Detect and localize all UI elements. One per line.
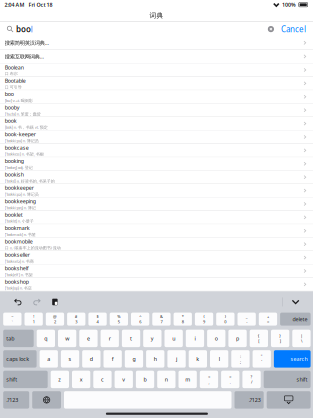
button[interactable]: :	[231, 350, 250, 368]
staticText: [bʊk] n. 书，书籍 vt. 预定	[5, 125, 48, 130]
button[interactable]: Boolean	[0, 63, 313, 77]
button[interactable]: 搜索互联网词典…	[0, 50, 313, 63]
staticText: 7	[160, 319, 162, 324]
button[interactable]: #	[67, 313, 85, 326]
button[interactable]: >	[221, 371, 239, 388]
button[interactable]: delete	[280, 313, 311, 326]
button[interactable]: tab	[3, 330, 34, 347]
button[interactable]: bookkeeping	[0, 197, 313, 211]
button[interactable]: (	[195, 313, 213, 326]
button[interactable]: "	[253, 350, 271, 368]
button[interactable]: m	[178, 371, 197, 388]
button[interactable]: %	[110, 313, 128, 326]
button[interactable]: )	[216, 313, 234, 326]
staticText: boo	[5, 90, 14, 97]
button[interactable]: Hide keyboard	[267, 391, 311, 409]
button[interactable]: w	[58, 330, 76, 347]
button[interactable]: }	[271, 330, 289, 347]
button[interactable]: t	[122, 330, 140, 347]
button[interactable]: e	[79, 330, 98, 347]
staticText: .?123	[6, 396, 18, 403]
button[interactable]: c	[93, 371, 112, 388]
button[interactable]: r	[101, 330, 119, 347]
button[interactable]: Next keyboard	[32, 391, 61, 409]
button[interactable]: |	[292, 330, 311, 347]
button[interactable]: *	[174, 313, 192, 326]
button[interactable]: y	[143, 330, 161, 347]
button[interactable]: bookmobile	[0, 238, 313, 251]
staticText: p	[236, 335, 239, 342]
staticText: bookkeeping	[5, 198, 36, 205]
button[interactable]: $	[88, 313, 107, 326]
staticText: s	[69, 355, 72, 362]
button[interactable]: d	[82, 350, 100, 368]
button[interactable]	[64, 391, 231, 409]
button[interactable]: a	[40, 350, 58, 368]
button[interactable]: ~	[3, 313, 21, 326]
button[interactable]: o	[207, 330, 225, 347]
button[interactable]: Redo	[31, 296, 42, 308]
button[interactable]: search	[274, 350, 311, 368]
staticText: 搜索简明英汉词典…	[5, 39, 49, 46]
button[interactable]: l	[210, 350, 228, 368]
staticText: f	[112, 355, 114, 362]
button[interactable]: Undo	[12, 296, 24, 308]
button[interactable]: book	[0, 117, 313, 130]
button[interactable]: f	[103, 350, 122, 368]
button[interactable]: booby	[0, 104, 313, 117]
button[interactable]: &	[152, 313, 171, 326]
button[interactable]: u	[164, 330, 183, 347]
button[interactable]: {	[250, 330, 268, 347]
button[interactable]: ^	[131, 313, 149, 326]
button[interactable]: Clear search text	[266, 26, 276, 32]
button[interactable]: Cancel	[276, 22, 313, 36]
button[interactable]: 搜索简明英汉词典…	[0, 36, 313, 50]
button[interactable]: h	[146, 350, 164, 368]
button[interactable]: .?123	[3, 391, 29, 409]
button[interactable]: shift	[3, 371, 48, 388]
staticText: d	[90, 355, 93, 362]
button[interactable]: bookshop	[0, 278, 313, 291]
button[interactable]: Bootable	[0, 77, 313, 90]
button[interactable]: z	[51, 371, 69, 388]
button[interactable]: b	[136, 371, 154, 388]
button[interactable]: q	[37, 330, 55, 347]
button[interactable]: +	[259, 313, 277, 326]
button[interactable]: x	[72, 371, 90, 388]
staticText: )	[225, 314, 226, 319]
button[interactable]: bookseller	[0, 251, 313, 264]
button[interactable]: v	[115, 371, 133, 388]
button[interactable]: <	[200, 371, 218, 388]
button[interactable]: p	[228, 330, 247, 347]
button[interactable]: k	[189, 350, 207, 368]
button[interactable]: .?123	[234, 391, 264, 409]
staticText: booking	[5, 157, 24, 164]
button[interactable]: bookshelf	[0, 264, 313, 278]
button[interactable]: bookcase	[0, 144, 313, 157]
button[interactable]: @	[46, 313, 64, 326]
button[interactable]: !	[24, 313, 43, 326]
button[interactable]: bookish	[0, 171, 313, 184]
button[interactable]: g	[125, 350, 143, 368]
button[interactable]: s	[61, 350, 79, 368]
staticText: q	[44, 335, 47, 342]
button[interactable]: caps lock	[3, 350, 37, 368]
staticText: }	[279, 333, 281, 338]
button[interactable]: book-keeper	[0, 130, 313, 144]
button[interactable]: _	[237, 313, 256, 326]
staticText: booby	[5, 104, 20, 111]
button[interactable]: bookmark	[0, 224, 313, 238]
button[interactable]: Paste	[49, 296, 60, 308]
staticText: 词典	[149, 11, 163, 20]
button[interactable]: i	[186, 330, 204, 347]
button[interactable]: n	[157, 371, 175, 388]
button[interactable]: j	[167, 350, 186, 368]
button[interactable]: booklet	[0, 211, 313, 224]
button[interactable]: boo	[0, 90, 313, 104]
button[interactable]: shift	[264, 371, 311, 388]
button[interactable]: ?	[242, 371, 261, 388]
button[interactable]: bookkeeper	[0, 184, 313, 197]
button[interactable]: Hide keyboard	[288, 296, 303, 308]
button[interactable]: booking	[0, 157, 313, 171]
staticText: x	[80, 376, 83, 383]
